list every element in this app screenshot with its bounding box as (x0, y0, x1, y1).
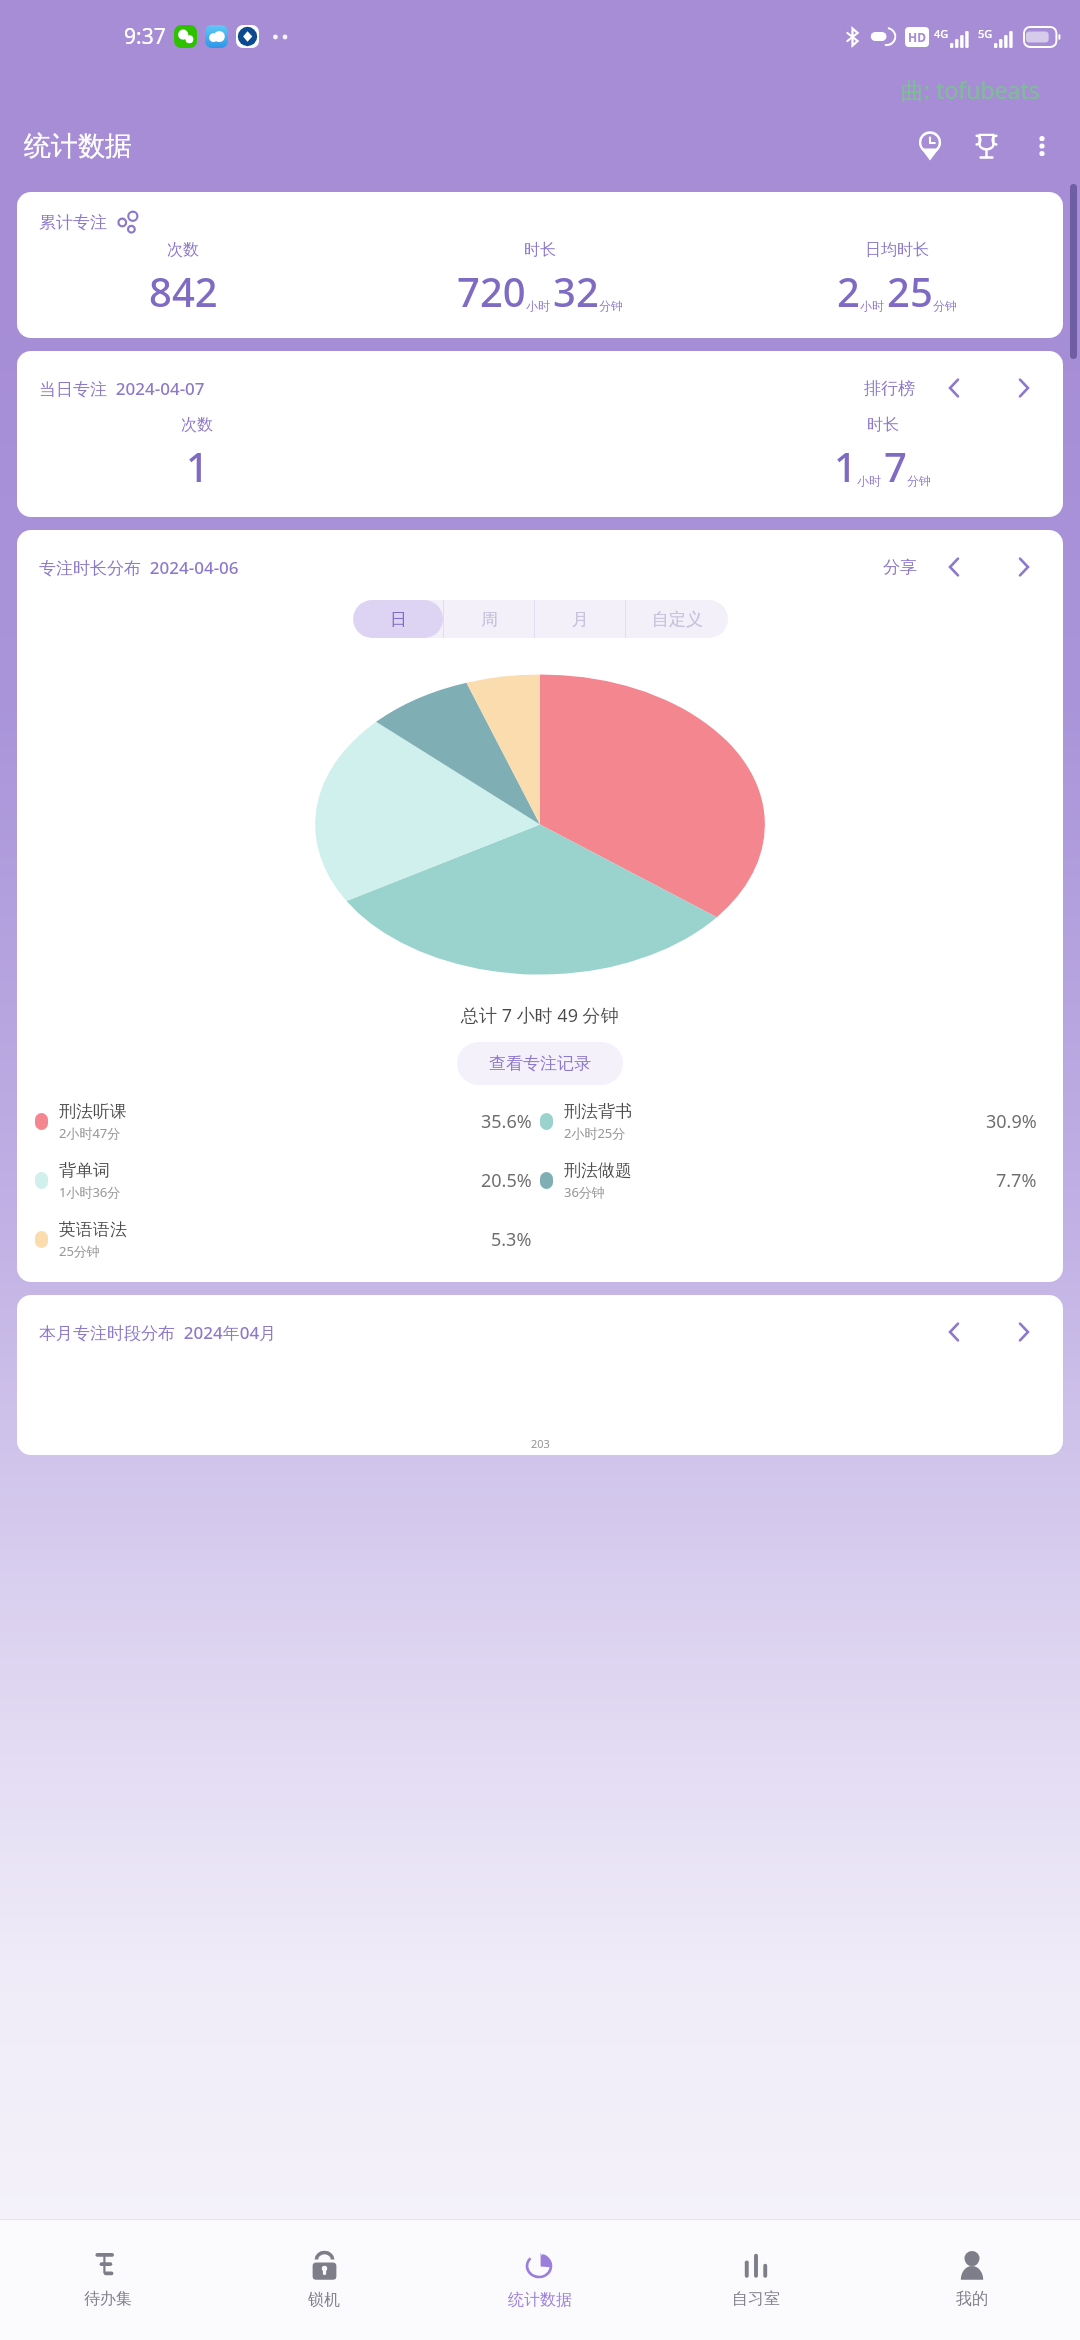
staticText: 2 (837, 264, 860, 318)
staticText: 我的 (956, 2289, 988, 2309)
button[interactable]: 锁机 (216, 2220, 432, 2340)
button[interactable]: 上一个 (935, 548, 973, 586)
staticText: 次数 (181, 415, 213, 435)
staticText: 自定义 (652, 609, 703, 630)
staticText: 36分钟 (564, 1183, 605, 1201)
staticText: 4G (934, 26, 949, 41)
staticText: 统计数据 (508, 2290, 572, 2310)
button[interactable]: 分享 (883, 557, 917, 578)
staticText: 203 (531, 1436, 550, 1451)
staticText: 25分钟 (59, 1242, 100, 1260)
button[interactable]: 月 (535, 600, 625, 638)
staticText: 总计 7 小时 49 分钟 (461, 1003, 619, 1028)
button[interactable]: 刑法听课 (35, 1101, 540, 1142)
staticText: 分钟 (907, 473, 931, 488)
staticText: 统计数据 (24, 129, 132, 163)
staticText: 35.6% (481, 1109, 532, 1134)
staticText: 分钟 (933, 298, 957, 313)
button[interactable]: 我的 (864, 2220, 1080, 2340)
button[interactable]: 刑法背书 (540, 1101, 1045, 1142)
staticText: 当日专注 2024-04-07 (39, 377, 205, 400)
staticText: 小时 (857, 473, 881, 488)
button[interactable]: 专注时刻 (902, 118, 958, 174)
staticText: 2小时47分 (59, 1124, 121, 1142)
staticText: 累计专注 (39, 212, 107, 233)
staticText: 刑法听课 (59, 1101, 127, 1122)
staticText: 5G (978, 26, 993, 41)
button[interactable]: 下一个 (1005, 1313, 1043, 1351)
staticText: 7 (884, 439, 907, 493)
staticText: 32 (553, 264, 599, 318)
button[interactable]: 上一个 (935, 1313, 973, 1351)
staticText: 刑法做题 (564, 1160, 632, 1181)
button[interactable]: 排行榜 (862, 378, 917, 399)
staticText: 本月专注时段分布 2024年04月 (39, 1321, 277, 1344)
button[interactable]: 上一个 (935, 369, 973, 407)
staticText: 背单词 (59, 1160, 110, 1181)
staticText: 次数 (167, 240, 199, 260)
staticText: 刑法背书 (564, 1101, 632, 1122)
staticText: 25 (887, 264, 933, 318)
button[interactable]: 自习室 (648, 2220, 864, 2340)
button[interactable]: 更多 (1014, 118, 1070, 174)
staticText: 曲: tofubeats (901, 74, 1040, 105)
staticText: 1 (186, 439, 209, 493)
staticText: 小时 (860, 298, 884, 313)
staticText: 7.7% (996, 1168, 1037, 1193)
staticText: 周 (481, 609, 498, 630)
staticText: 月 (572, 609, 589, 630)
staticText: 自习室 (732, 2289, 780, 2309)
button[interactable]: 查看专注记录 (457, 1042, 623, 1085)
button[interactable]: 统计数据 (432, 2220, 648, 2340)
staticText: 20.5% (481, 1168, 532, 1193)
button[interactable]: 日 (353, 600, 443, 638)
button[interactable]: 下一个 (1005, 548, 1043, 586)
staticText: 查看专注记录 (489, 1053, 591, 1074)
staticText: 分钟 (599, 298, 623, 313)
staticText: 1小时36分 (59, 1183, 121, 1201)
staticText: 锁机 (308, 2290, 340, 2310)
staticText: 小时 (526, 298, 550, 313)
button[interactable]: 周 (444, 600, 534, 638)
staticText: 9:37 (124, 22, 166, 51)
button[interactable]: 排行榜 (958, 118, 1014, 174)
staticText: 1 (834, 439, 857, 493)
staticText: 待办集 (84, 2289, 132, 2309)
staticText: 5.3% (491, 1227, 532, 1252)
staticText: 720 (457, 264, 526, 318)
staticText: 时长 (524, 240, 556, 260)
staticText: 842 (149, 264, 218, 318)
button[interactable]: 背单词 (35, 1160, 540, 1201)
staticText: 日均时长 (865, 240, 929, 260)
button[interactable]: 英语语法 (35, 1219, 540, 1260)
staticText: 英语语法 (59, 1219, 127, 1240)
button[interactable]: 下一个 (1005, 369, 1043, 407)
staticText: 30.9% (986, 1109, 1037, 1134)
staticText: 2小时25分 (564, 1124, 626, 1142)
button[interactable]: 待办集 (0, 2220, 216, 2340)
staticText: 专注时长分布 2024-04-06 (39, 556, 239, 579)
button[interactable]: 自定义 (626, 600, 728, 638)
staticText: 时长 (867, 415, 899, 435)
staticText: HD (908, 29, 926, 45)
button[interactable]: 刑法做题 (540, 1160, 1045, 1201)
staticText: 日 (390, 609, 407, 630)
